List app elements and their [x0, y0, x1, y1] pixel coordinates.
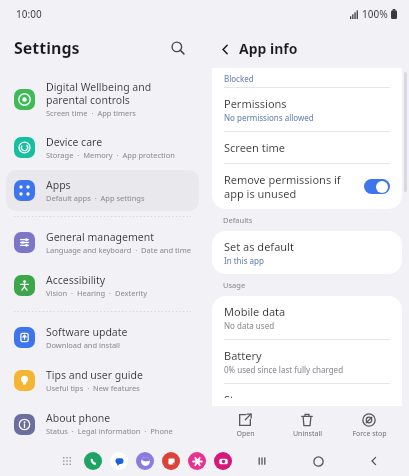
button[interactable]: Storage — [212, 384, 402, 406]
staticText: Digital Wellbeing and parental controls — [46, 80, 191, 107]
staticText: 100% — [362, 7, 388, 21]
button[interactable]: All apps — [58, 452, 76, 470]
staticText: Download and install — [46, 340, 120, 350]
staticText: Permissions — [224, 96, 287, 111]
staticText: Settings — [14, 37, 80, 59]
button[interactable]: Search — [165, 35, 191, 61]
staticText: Usage — [223, 280, 246, 290]
button[interactable]: Software update — [6, 317, 199, 358]
button[interactable]: phone — [84, 452, 102, 470]
staticText: Language and keyboard · Date and time — [46, 245, 191, 255]
staticText: Open — [236, 429, 255, 439]
button[interactable]: Mobile data — [212, 296, 402, 339]
staticText: Blocked — [224, 73, 254, 84]
button[interactable]: About phone — [6, 403, 199, 445]
button[interactable]: Home — [307, 450, 329, 472]
staticText: Storage · Memory · App protection — [46, 150, 175, 160]
staticText: Useful tips · New features — [46, 383, 140, 393]
staticText: No permissions allowed — [224, 112, 314, 123]
button[interactable]: store — [162, 452, 180, 470]
button[interactable]: messages — [110, 452, 128, 470]
button[interactable]: camera — [214, 452, 232, 470]
staticText: In this app — [224, 255, 264, 266]
button[interactable]: Battery — [212, 340, 402, 383]
staticText: 10:00 — [16, 7, 42, 21]
button[interactable]: Back — [213, 35, 302, 62]
staticText: Software update — [46, 325, 128, 339]
button[interactable]: Tips and user guide — [6, 360, 199, 401]
staticText: App info — [239, 39, 298, 58]
staticText: Screen time · App timers — [46, 108, 136, 118]
button[interactable]: General management — [6, 222, 199, 263]
staticText: Status · Legal information · Phone name — [46, 426, 191, 437]
staticText: Tips and user guide — [46, 368, 143, 382]
staticText: 0% used since last fully charged — [224, 364, 344, 375]
button[interactable]: Set as default — [212, 231, 402, 274]
button[interactable]: Device care — [6, 127, 199, 168]
staticText: Mobile data — [224, 304, 286, 319]
staticText: Defaults — [223, 215, 253, 225]
staticText: Screen time — [224, 140, 286, 155]
staticText: General management — [46, 230, 154, 244]
staticText: Vision · Hearing · Dexterity — [46, 288, 148, 298]
staticText: Storage — [224, 392, 265, 398]
button[interactable]: internet — [136, 452, 154, 470]
button[interactable]: Back — [363, 450, 385, 472]
staticText: Battery — [224, 348, 262, 363]
staticText: About phone — [46, 411, 111, 425]
button[interactable]: Apps — [6, 170, 199, 211]
staticText: No data used — [224, 320, 275, 331]
button[interactable]: Digital Wellbeing and parental controls — [6, 73, 199, 125]
staticText: Accessibility — [46, 273, 106, 287]
staticText: Set as default — [224, 239, 294, 254]
button[interactable]: Recents — [251, 450, 273, 472]
staticText: Device care — [46, 135, 103, 149]
button[interactable]: Permissions — [212, 88, 402, 131]
staticText: Force stop — [352, 429, 387, 439]
staticText: Remove permissions if app is unused — [224, 172, 354, 201]
button[interactable]: Force stop — [341, 410, 397, 442]
other: Back — [217, 41, 233, 57]
button[interactable]: settings2 — [188, 452, 206, 470]
staticText: Apps — [46, 178, 71, 192]
staticText: Uninstall — [293, 429, 322, 439]
button[interactable]: Uninstall — [279, 410, 335, 442]
staticText: Default apps · App settings — [46, 193, 145, 203]
button[interactable]: Open — [217, 410, 273, 442]
button[interactable]: Accessibility — [6, 265, 199, 306]
button[interactable]: Screen time — [212, 132, 402, 163]
button[interactable]: Remove permissions if app is unused — [212, 164, 402, 209]
